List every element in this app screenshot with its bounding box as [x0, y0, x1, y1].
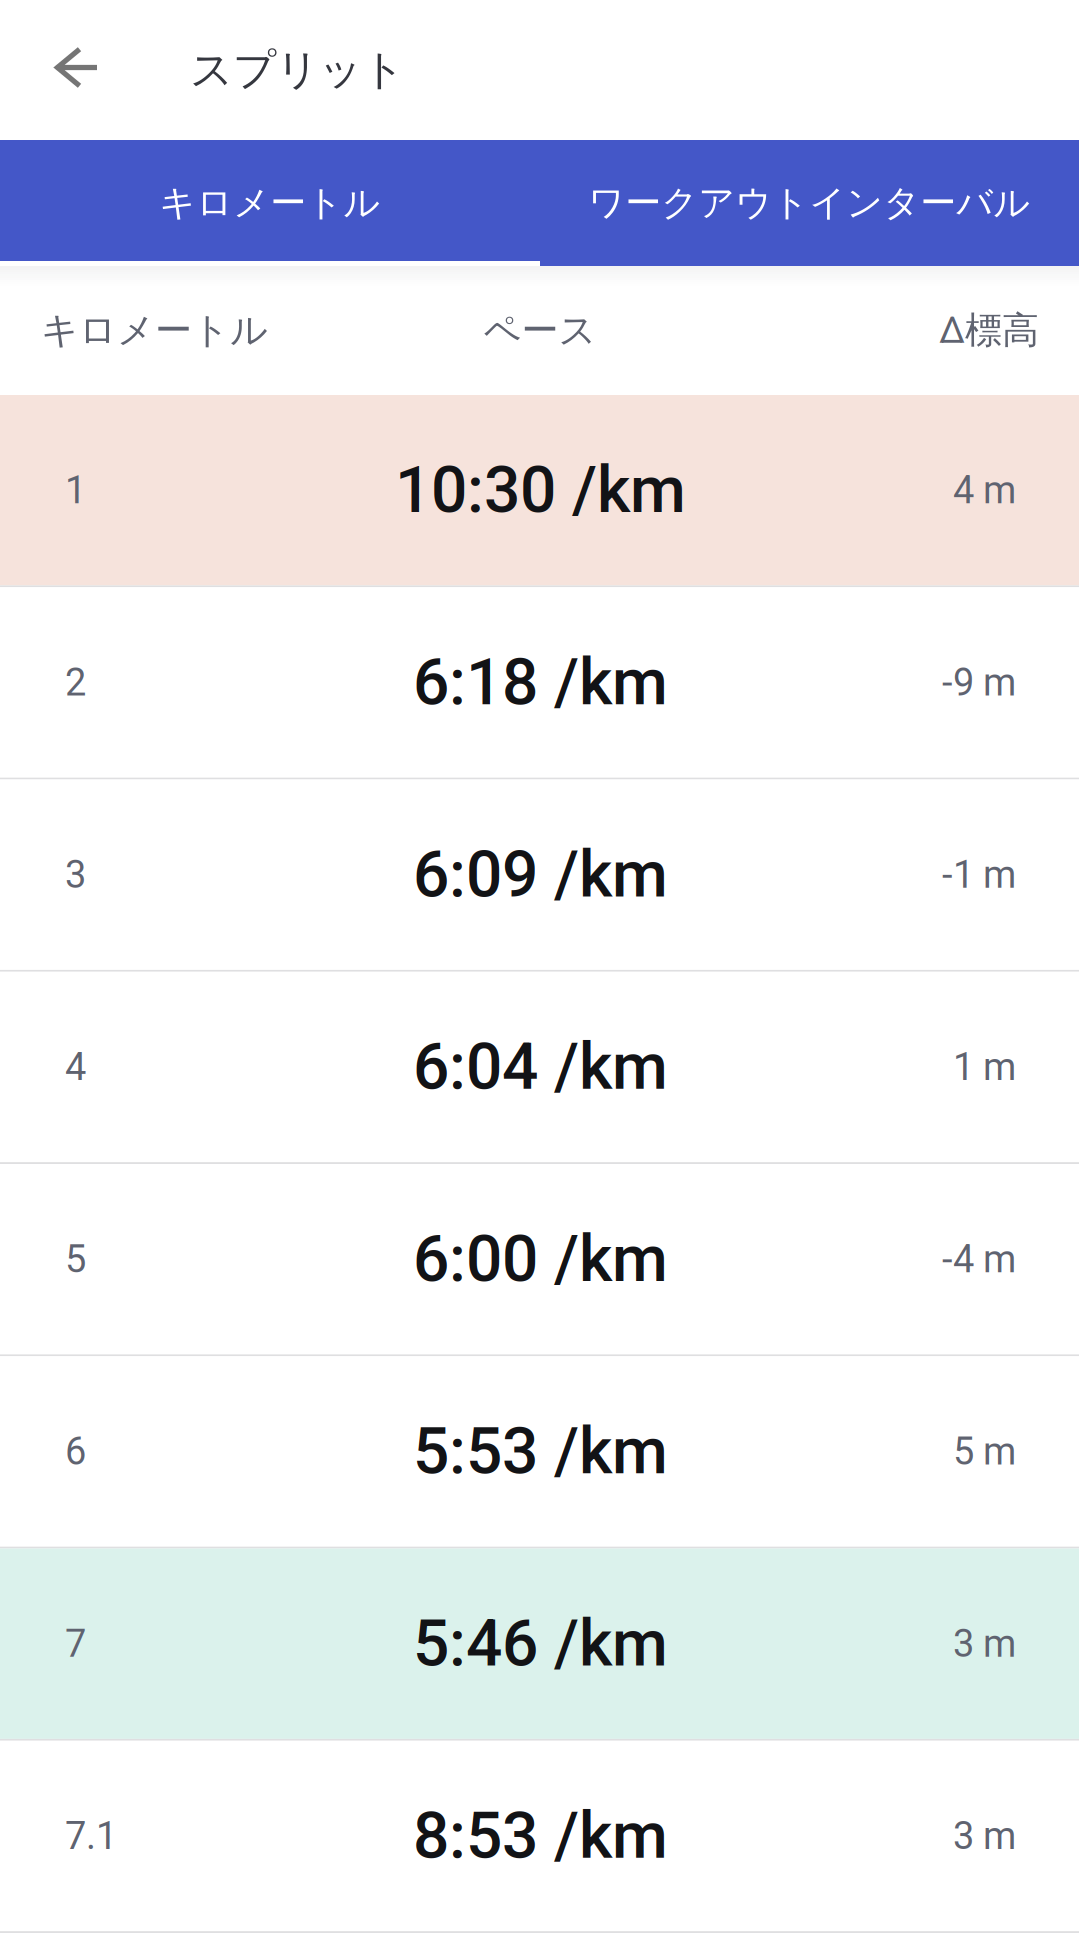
staticText: 6:00 /km: [413, 1222, 668, 1297]
staticText: 5:53 /km: [413, 1414, 668, 1489]
staticText: スプリット: [190, 43, 405, 97]
staticText: 3 m: [953, 1814, 1016, 1858]
staticText: 7: [65, 1621, 86, 1666]
button[interactable]: 5: [0, 1164, 1079, 1354]
button[interactable]: 2: [0, 587, 1079, 778]
staticText: 3 m: [953, 1621, 1016, 1666]
staticText: 1: [65, 468, 86, 512]
button[interactable]: 7.1: [0, 1741, 1079, 1931]
staticText: 8:53 /km: [413, 1798, 668, 1873]
staticText: 6:18 /km: [413, 645, 668, 720]
button[interactable]: 3: [0, 779, 1079, 970]
staticText: 6:04 /km: [413, 1029, 668, 1104]
button[interactable]: Back: [0, 0, 148, 140]
button[interactable]: 1: [0, 395, 1079, 585]
staticText: 5: [65, 1237, 86, 1281]
button[interactable]: ワークアウトインターバル: [539, 140, 1079, 266]
staticText: 6:09 /km: [413, 837, 668, 912]
staticText: 1 m: [953, 1045, 1016, 1089]
staticText: Δ標高: [939, 307, 1039, 354]
staticText: 5:46 /km: [413, 1606, 668, 1681]
staticText: 6: [65, 1429, 86, 1474]
staticText: 10:30 /km: [395, 453, 686, 528]
button[interactable]: キロメートル: [0, 140, 539, 266]
staticText: -1 m: [942, 852, 1016, 897]
staticText: ワークアウトインターバル: [588, 180, 1030, 226]
staticText: 5 m: [953, 1429, 1016, 1474]
staticText: 4: [65, 1045, 86, 1089]
button[interactable]: 6: [0, 1356, 1079, 1547]
staticText: キロメートル: [41, 307, 268, 354]
staticText: -9 m: [942, 660, 1016, 705]
staticText: -4 m: [942, 1237, 1016, 1281]
button[interactable]: 7: [0, 1548, 1079, 1739]
staticText: 4 m: [953, 468, 1016, 512]
staticText: ペース: [483, 307, 596, 354]
button[interactable]: 4: [0, 972, 1079, 1162]
staticText: キロメートル: [159, 180, 380, 226]
staticText: 3: [65, 852, 86, 897]
staticText: 7.1: [65, 1814, 117, 1858]
staticText: 2: [65, 660, 86, 705]
